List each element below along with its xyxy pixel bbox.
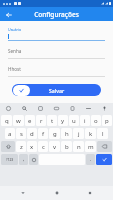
button[interactable]: v: [49, 141, 60, 152]
staticText: p: [105, 117, 109, 125]
button[interactable]: Back: [3, 9, 14, 20]
button[interactable]: Salvar: [12, 84, 101, 96]
button[interactable]: Usuário: [8, 27, 105, 41]
staticText: Salvar: [49, 87, 65, 94]
staticText: q: [5, 117, 9, 125]
button[interactable]: Emoji: [29, 154, 38, 165]
button[interactable]: Shift: [1, 141, 15, 152]
button[interactable]: q: [1, 115, 12, 126]
button[interactable]: i: [80, 115, 90, 126]
staticText: o: [94, 117, 98, 125]
staticText: u: [72, 117, 76, 125]
button[interactable]: Voice settings: [4, 104, 13, 113]
button[interactable]: Senha: [8, 45, 105, 59]
staticText: n: [77, 143, 81, 151]
button[interactable]: c: [38, 141, 48, 152]
staticText: z: [20, 143, 23, 151]
staticText: j: [78, 130, 80, 138]
button[interactable]: m: [85, 141, 96, 152]
button[interactable]: r: [36, 115, 46, 126]
button[interactable]: j: [73, 128, 84, 139]
staticText: c: [42, 143, 45, 151]
staticText: m: [88, 143, 94, 151]
staticText: g: [53, 130, 57, 138]
button[interactable]: z: [16, 141, 26, 152]
staticText: Senha: [8, 48, 22, 54]
button[interactable]: g: [49, 128, 60, 139]
button[interactable]: .: [86, 154, 95, 165]
staticText: b: [65, 143, 69, 151]
button[interactable]: s: [16, 128, 26, 139]
button[interactable]: Hhost: [8, 63, 105, 77]
button[interactable]: d: [27, 128, 37, 139]
button[interactable]: n: [73, 141, 84, 152]
button[interactable]: ?123: [1, 154, 18, 165]
staticText: k: [89, 130, 93, 138]
button[interactable]: h: [61, 128, 72, 139]
staticText: ?123: [6, 157, 14, 162]
button[interactable]: l: [97, 128, 108, 139]
button[interactable]: Home: [47, 187, 67, 199]
staticText: v: [53, 143, 57, 151]
staticText: Configurações: [34, 10, 79, 19]
button[interactable]: ,: [19, 154, 28, 165]
button[interactable]: w: [13, 115, 24, 126]
button[interactable]: Recents: [80, 187, 100, 199]
button[interactable]: b: [61, 141, 72, 152]
button[interactable]: p: [102, 115, 112, 126]
button[interactable]: o: [91, 115, 101, 126]
staticText: i: [84, 117, 86, 125]
button[interactable]: e: [25, 115, 35, 126]
staticText: Usuário: [8, 27, 22, 32]
button[interactable]: Done: [96, 154, 112, 165]
button[interactable]: Voice input: [100, 104, 109, 113]
button[interactable]: Backspace: [97, 141, 112, 152]
button[interactable]: GIF: [52, 104, 61, 113]
button[interactable]: u: [69, 115, 79, 126]
staticText: Hhost: [8, 66, 21, 72]
button[interactable]: f: [38, 128, 48, 139]
button[interactable]: k: [85, 128, 96, 139]
button[interactable]: y: [58, 115, 68, 126]
button[interactable]: a: [5, 128, 15, 139]
staticText: r: [40, 117, 43, 125]
button[interactable]: x: [27, 141, 37, 152]
staticText: .: [90, 156, 92, 163]
button[interactable]: Search: [20, 104, 29, 113]
button[interactable]: Back: [13, 187, 33, 199]
button[interactable]: Clipboard: [68, 104, 77, 113]
staticText: e: [28, 117, 32, 125]
staticText: ,: [23, 156, 25, 163]
staticText: w: [16, 117, 21, 125]
button[interactable]: t: [47, 115, 57, 126]
staticText: s: [20, 130, 23, 138]
button[interactable]: Stickers: [36, 104, 45, 113]
staticText: t: [51, 117, 54, 125]
staticText: d: [30, 130, 34, 138]
staticText: h: [65, 130, 69, 138]
staticText: l: [102, 130, 104, 138]
staticText: f: [42, 130, 45, 138]
staticText: a: [8, 130, 12, 138]
staticText: y: [61, 117, 65, 125]
button[interactable]: More options: [84, 104, 93, 113]
staticText: x: [30, 143, 34, 151]
